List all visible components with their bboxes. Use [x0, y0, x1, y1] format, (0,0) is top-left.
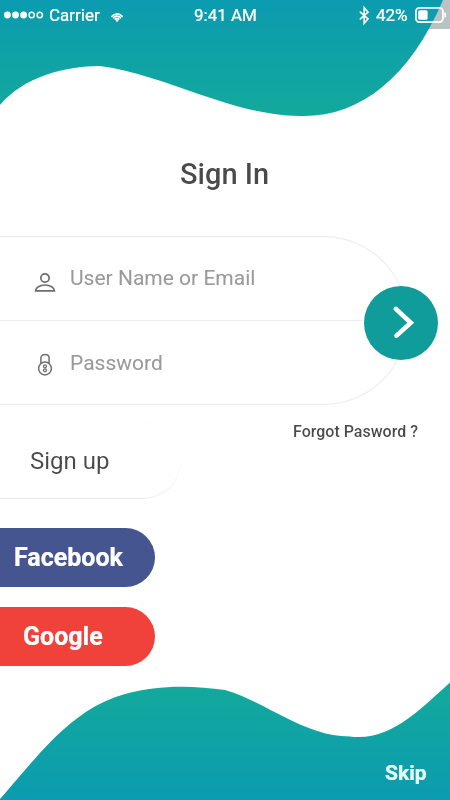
button[interactable]: Password [0, 321, 408, 405]
staticText: 42% [376, 5, 408, 25]
button[interactable]: Forgot Pasword ? [290, 419, 421, 444]
staticText: Sign up [30, 447, 110, 475]
staticText: Facebook [14, 543, 123, 572]
staticText: Forgot Pasword ? [293, 422, 418, 441]
button[interactable]: Facebook [0, 528, 155, 587]
button[interactable]: Google [0, 607, 155, 666]
staticText: Google [23, 622, 103, 651]
staticText: Password [70, 351, 163, 376]
button[interactable]: Sign in [364, 286, 438, 360]
staticText: 9:41 AM [194, 5, 257, 25]
button[interactable]: Sign up [0, 422, 181, 499]
button[interactable]: User Name or Email [0, 236, 408, 320]
staticText: User Name or Email [70, 266, 256, 291]
staticText: Carrier [49, 5, 100, 25]
staticText: Sign In [180, 157, 270, 191]
button[interactable]: Skip [383, 759, 429, 788]
staticText: Skip [385, 761, 427, 786]
